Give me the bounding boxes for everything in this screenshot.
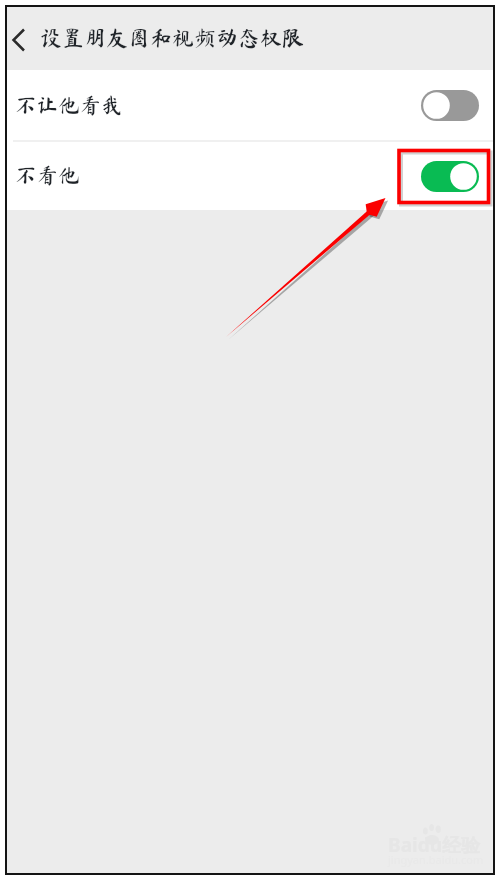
button[interactable]: 已关闭	[421, 90, 479, 121]
button[interactable]: 已开启	[421, 161, 479, 192]
staticText: 不看他	[15, 164, 80, 186]
staticText: 设置朋友圈和视频动态权限	[40, 27, 305, 49]
button[interactable]: 返回	[6, 21, 40, 55]
button[interactable]: 不看他	[6, 142, 494, 210]
button[interactable]: 不让他看我	[6, 70, 494, 140]
staticText: 不让他看我	[15, 94, 123, 116]
